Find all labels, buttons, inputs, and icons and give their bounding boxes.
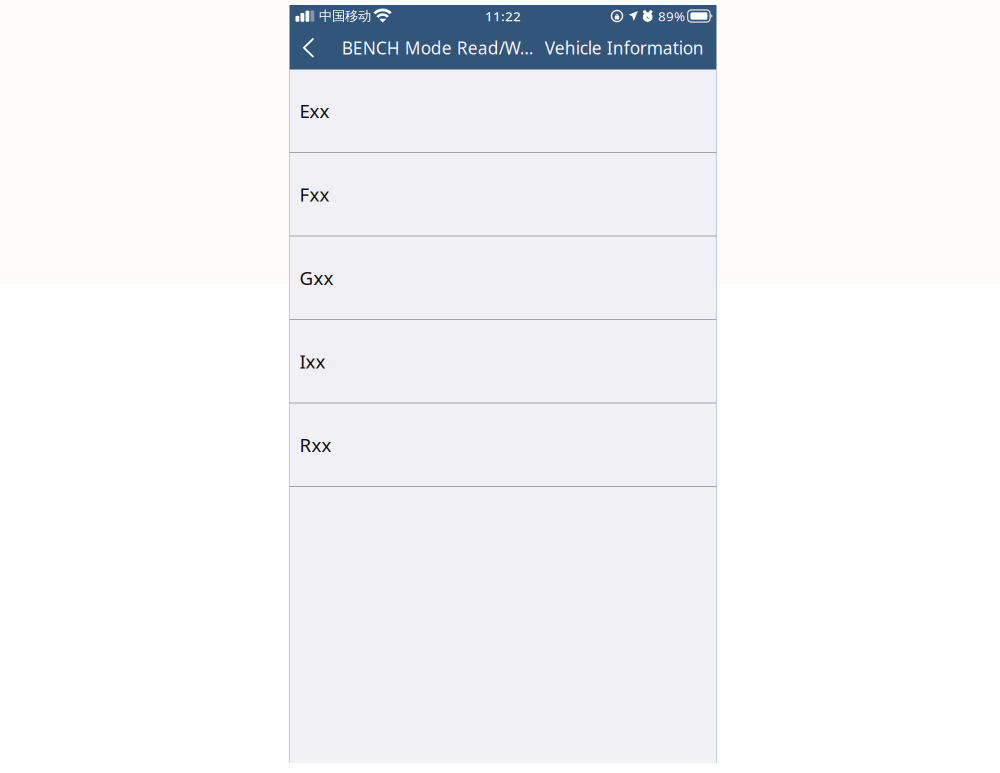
staticText: Fxx xyxy=(299,182,329,207)
button[interactable]: Back xyxy=(302,28,342,67)
staticText: Ixx xyxy=(299,349,325,374)
button[interactable]: Gxx xyxy=(289,236,716,320)
button[interactable]: Ixx xyxy=(289,320,716,403)
button[interactable]: Rxx xyxy=(289,403,716,487)
button[interactable]: Fxx xyxy=(289,153,716,236)
staticText: Vehicle Information xyxy=(545,36,704,59)
staticText: 89% xyxy=(658,7,685,25)
staticText: BENCH Mode Read/W… xyxy=(342,36,534,59)
staticText: 中国移动 xyxy=(319,8,371,24)
staticText: Gxx xyxy=(299,265,333,290)
button[interactable]: Exx xyxy=(289,69,716,153)
staticText: Exx xyxy=(299,98,329,123)
staticText: Rxx xyxy=(299,432,331,457)
staticText: 11:22 xyxy=(485,7,521,25)
